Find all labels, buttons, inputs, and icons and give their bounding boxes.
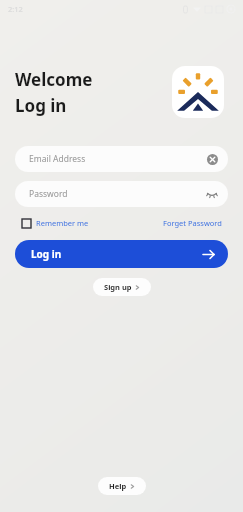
staticText: 2:12 [8,4,23,14]
staticText: Password [29,188,68,200]
staticText: Help [109,481,127,491]
other: App logo [172,66,224,118]
button[interactable]: Show password [206,188,218,200]
staticText: Sign up [104,282,132,292]
staticText: Email Address [29,153,86,165]
button[interactable]: Help [98,477,146,495]
button[interactable]: Remember me [22,218,89,228]
staticText: Forget Password [163,218,222,228]
button[interactable]: Sign up [93,278,151,296]
button[interactable]: Email Address [15,146,228,172]
staticText: Log in [31,247,62,261]
button[interactable]: Forget Password [163,218,222,228]
button[interactable]: Clear email [207,154,218,165]
staticText: Welcome [15,68,93,91]
button[interactable]: Log in [15,240,228,268]
button[interactable]: Password [15,181,228,207]
staticText: Log in [15,94,67,117]
staticText: Remember me [36,218,89,228]
